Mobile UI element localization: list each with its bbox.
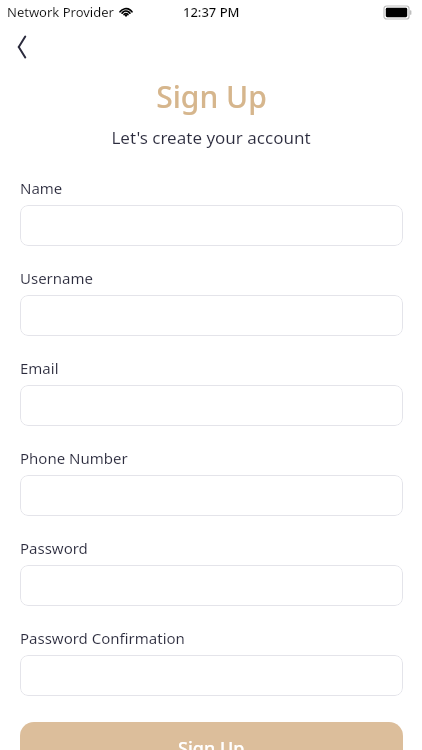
button[interactable]: Password Confirmation [20, 655, 403, 696]
button[interactable]: Sign Up [20, 722, 403, 750]
button[interactable]: Phone Number [20, 475, 403, 516]
staticText: Sign Up [156, 76, 267, 117]
staticText: Email [20, 358, 59, 378]
button[interactable]: Name [20, 205, 403, 246]
staticText: Name [20, 178, 63, 198]
button[interactable]: Password [20, 565, 403, 606]
button[interactable]: Username [20, 295, 403, 336]
staticText: Username [20, 268, 93, 288]
staticText: 12:37 PM [183, 3, 240, 21]
staticText: Sign Up [178, 736, 245, 750]
staticText: Let's create your account [111, 126, 311, 149]
button[interactable]: Email [20, 385, 403, 426]
staticText: Phone Number [20, 448, 128, 468]
staticText: Password [20, 538, 88, 558]
staticText: Network Provider [7, 3, 114, 21]
button[interactable]: Back [4, 30, 38, 64]
staticText: Password Confirmation [20, 628, 185, 648]
